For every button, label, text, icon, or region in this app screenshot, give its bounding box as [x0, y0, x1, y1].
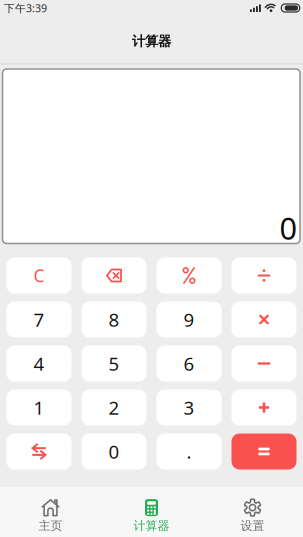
staticText: 1: [33, 395, 44, 420]
button[interactable]: 1: [6, 389, 71, 425]
staticText: 4: [33, 351, 44, 376]
button[interactable]: ÷: [231, 257, 296, 293]
staticText: 8: [108, 307, 119, 332]
button[interactable]: −: [231, 345, 296, 381]
button[interactable]: 3: [156, 389, 221, 425]
button[interactable]: 正负切换: [6, 433, 71, 469]
button[interactable]: 8: [81, 301, 146, 337]
staticText: 设置: [240, 518, 264, 533]
staticText: 主页: [38, 518, 62, 533]
staticText: 2: [108, 395, 119, 420]
button[interactable]: 计算器: [101, 487, 202, 537]
button[interactable]: =: [231, 433, 296, 469]
staticText: 计算器: [133, 518, 169, 533]
staticText: 9: [183, 307, 194, 332]
button[interactable]: 退格: [81, 257, 146, 293]
button[interactable]: %: [156, 257, 221, 293]
button[interactable]: 0: [81, 433, 146, 469]
button[interactable]: 9: [156, 301, 221, 337]
button[interactable]: 7: [6, 301, 71, 337]
staticText: C: [33, 264, 44, 287]
staticText: 6: [183, 351, 194, 376]
staticText: 7: [33, 307, 44, 332]
staticText: 下午3:39: [4, 1, 47, 15]
staticText: 0: [279, 208, 297, 248]
button[interactable]: 6: [156, 345, 221, 381]
staticText: 0: [108, 439, 119, 464]
button[interactable]: +: [231, 389, 296, 425]
staticText: .: [186, 439, 191, 464]
staticText: 5: [108, 351, 119, 376]
button[interactable]: 主页: [0, 487, 101, 537]
button[interactable]: 4: [6, 345, 71, 381]
button[interactable]: 5: [81, 345, 146, 381]
staticText: 3: [183, 395, 194, 420]
button[interactable]: 2: [81, 389, 146, 425]
button[interactable]: 设置: [202, 487, 303, 537]
button[interactable]: ×: [231, 301, 296, 337]
button[interactable]: .: [156, 433, 221, 469]
staticText: 计算器: [132, 33, 171, 49]
button[interactable]: C: [6, 257, 71, 293]
